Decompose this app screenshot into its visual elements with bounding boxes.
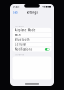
button[interactable]: Cellular (12, 42, 51, 47)
staticText: Settings (26, 11, 37, 14)
staticText: Bluetooth (15, 38, 30, 41)
button[interactable]: Back (10, 10, 18, 15)
staticText: Back (12, 11, 17, 14)
staticText: 9:41 (13, 5, 20, 8)
staticText: Notifications (15, 48, 32, 51)
button[interactable]: Notifications (12, 47, 51, 52)
staticText: Airplane Mode (15, 28, 36, 32)
staticText: Wi-Fi (15, 33, 21, 37)
staticText: SECTION TWO (15, 54, 24, 56)
button[interactable]: Wi-Fi (12, 33, 51, 37)
button[interactable]: Bluetooth (12, 37, 51, 42)
staticText: Cellular (15, 43, 26, 46)
button[interactable]: Airplane Mode (12, 28, 51, 32)
staticText: SECTION ONE (15, 25, 24, 27)
